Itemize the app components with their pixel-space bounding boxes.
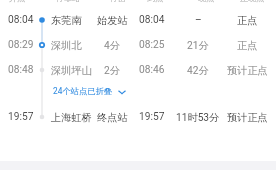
staticText: 08:48 <box>8 64 34 76</box>
staticText: 上海虹桥 <box>51 111 92 124</box>
staticText: 东莞南 <box>51 14 82 27</box>
button[interactable]: 19:57 <box>0 104 276 129</box>
staticText: 到点 <box>147 0 163 3</box>
button[interactable]: 08:29 <box>0 32 276 57</box>
staticText: 预计正点 <box>227 64 268 77</box>
staticText: 11时53分 <box>176 111 220 124</box>
staticText: 08:04 <box>139 14 165 26</box>
staticText: 24个站点已折叠 <box>53 86 113 96</box>
button[interactable]: 08:48 <box>0 57 276 82</box>
staticText: 08:25 <box>139 39 165 51</box>
staticText: 正点 <box>237 14 258 27</box>
staticText: 19:57 <box>139 111 165 123</box>
staticText: 42分 <box>187 64 209 77</box>
staticText: 深圳坪山 <box>51 64 92 77</box>
staticText: 停留 <box>110 0 126 3</box>
staticText: 始发站 <box>97 14 128 27</box>
staticText: 终点站 <box>97 111 128 124</box>
staticText: 预计正点 <box>227 111 268 124</box>
staticText: 停靠站 <box>56 0 80 3</box>
button[interactable]: 08:04 <box>0 7 276 32</box>
staticText: 正点 <box>237 39 258 52</box>
button[interactable]: 24个站点已折叠 <box>53 85 128 97</box>
staticText: 晚点 <box>198 0 214 3</box>
staticText: 开点 <box>9 0 25 3</box>
staticText: 08:29 <box>8 39 34 51</box>
staticText: 19:57 <box>8 111 34 123</box>
staticText: 21分 <box>187 39 209 52</box>
staticText: 深圳北 <box>51 39 82 52</box>
staticText: 08:46 <box>139 64 165 76</box>
staticText: 08:04 <box>8 14 34 26</box>
staticText: 正晚点 <box>240 0 264 3</box>
staticText: 2分 <box>104 64 120 77</box>
staticText: 4分 <box>104 39 120 52</box>
staticText: – <box>195 14 202 26</box>
